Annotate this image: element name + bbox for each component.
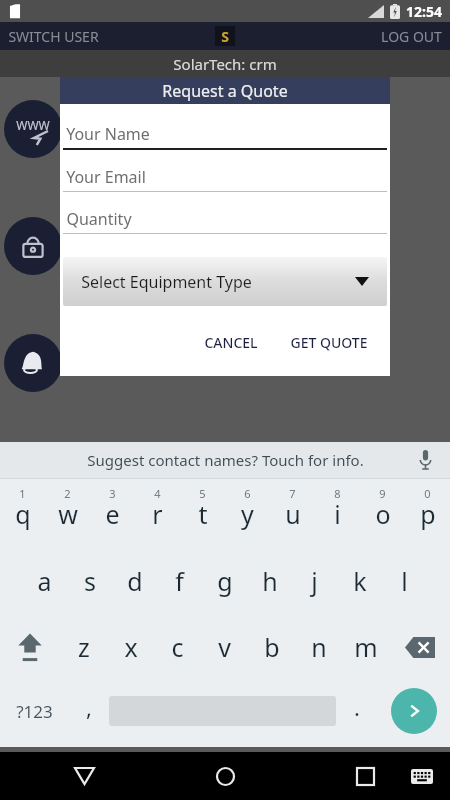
button[interactable]: h: [247, 548, 292, 614]
button[interactable]: 4: [135, 479, 180, 548]
button[interactable]: Backspace: [389, 614, 450, 680]
staticText: LOG OUT: [381, 27, 442, 46]
staticText: e: [105, 497, 120, 531]
button[interactable]: c: [154, 614, 201, 680]
staticText: Request a Quote: [162, 80, 288, 102]
staticText: v: [218, 630, 231, 664]
button[interactable]: 8: [315, 479, 360, 548]
button[interactable]: Suggest contact names? Touch for info.: [0, 442, 450, 478]
button[interactable]: b: [248, 614, 295, 680]
staticText: 9: [379, 486, 386, 501]
staticText: 6: [244, 486, 251, 501]
staticText: d: [127, 564, 143, 598]
button[interactable]: m: [342, 614, 389, 680]
staticText: p: [420, 497, 436, 531]
button[interactable]: Shift: [0, 614, 60, 680]
staticText: z: [78, 630, 90, 664]
button[interactable]: MANAGE NOTIFICATIONS: [0, 333, 450, 393]
staticText: 3: [109, 486, 116, 501]
staticText: o: [375, 497, 391, 531]
staticText: CANCEL: [204, 333, 258, 352]
staticText: u: [285, 497, 301, 531]
button[interactable]: g: [202, 548, 247, 614]
staticText: r: [152, 497, 163, 531]
staticText: a: [37, 564, 52, 598]
button[interactable]: Quantity: [63, 205, 387, 233]
button[interactable]: 2: [45, 479, 90, 548]
staticText: 1: [19, 486, 26, 501]
staticText: 0: [424, 486, 431, 501]
button[interactable]: Home: [203, 754, 247, 798]
button[interactable]: Next: [377, 680, 450, 742]
button[interactable]: ?123: [0, 680, 68, 742]
staticText: 5: [199, 486, 206, 501]
button[interactable]: 0: [405, 479, 450, 548]
staticText: h: [262, 564, 278, 598]
staticText: l: [401, 564, 408, 598]
button[interactable]: Select Equipment Type: [63, 257, 387, 306]
staticText: Your Name: [66, 123, 150, 145]
staticText: m: [354, 630, 378, 664]
button[interactable]: n: [295, 614, 342, 680]
staticText: Suggest contact names? Touch for info.: [87, 450, 364, 470]
button[interactable]: 9: [360, 479, 405, 548]
button[interactable]: Your Name: [63, 120, 387, 148]
staticText: SWITCH USER: [8, 27, 99, 46]
button[interactable]: 1: [0, 479, 45, 548]
staticText: s: [84, 564, 96, 598]
staticText: 8: [334, 486, 341, 501]
button[interactable]: v: [201, 614, 248, 680]
button[interactable]: z: [60, 614, 107, 680]
button[interactable]: LOG OUT: [373, 27, 450, 46]
staticText: f: [175, 564, 184, 598]
button[interactable]: WWW: [0, 99, 450, 159]
staticText: S: [221, 27, 229, 46]
staticText: j: [311, 564, 318, 598]
staticText: b: [264, 630, 280, 664]
button[interactable]: Logo: [215, 26, 235, 46]
button[interactable]: Recents: [343, 754, 387, 798]
staticText: ,: [86, 692, 92, 722]
staticText: ?123: [16, 700, 53, 723]
other: Voice input: [419, 450, 432, 470]
button[interactable]: SWITCH USER: [0, 27, 107, 46]
button[interactable]: Back: [62, 754, 106, 798]
staticText: q: [15, 497, 31, 531]
button[interactable]: GET QUOTE: [280, 327, 378, 358]
button[interactable]: 7: [270, 479, 315, 548]
staticText: SolarTech: crm: [173, 54, 277, 74]
staticText: 7: [289, 486, 296, 501]
staticText: c: [171, 630, 184, 664]
staticText: GET QUOTE: [290, 333, 368, 352]
button[interactable]: j: [292, 548, 337, 614]
staticText: Your Email: [66, 166, 146, 188]
button[interactable]: .: [336, 680, 377, 742]
staticText: WWW: [16, 117, 50, 133]
button[interactable]: Your Email: [63, 163, 387, 191]
button[interactable]: f: [157, 548, 202, 614]
staticText: g: [217, 564, 233, 598]
staticText: t: [198, 497, 208, 531]
staticText: w: [58, 497, 78, 531]
button[interactable]: a: [22, 548, 67, 614]
button[interactable]: Switch keyboard: [400, 754, 444, 798]
button[interactable]: 6: [225, 479, 270, 548]
button[interactable]: 3: [90, 479, 135, 548]
staticText: n: [311, 630, 327, 664]
button[interactable]: s: [67, 548, 112, 614]
staticText: 2: [64, 486, 71, 501]
button[interactable]: MANAGE SECURITY: [0, 216, 450, 276]
button[interactable]: 5: [180, 479, 225, 548]
button[interactable]: x: [107, 614, 154, 680]
staticText: Quantity: [66, 208, 132, 230]
button[interactable]: k: [337, 548, 382, 614]
staticText: MANAGE WEBSITE: [78, 118, 225, 141]
button[interactable]: d: [112, 548, 157, 614]
button[interactable]: ,: [68, 680, 109, 742]
staticText: x: [124, 630, 138, 664]
staticText: 4: [154, 486, 161, 501]
button[interactable]: CANCEL: [194, 327, 268, 358]
button[interactable]: l: [382, 548, 427, 614]
